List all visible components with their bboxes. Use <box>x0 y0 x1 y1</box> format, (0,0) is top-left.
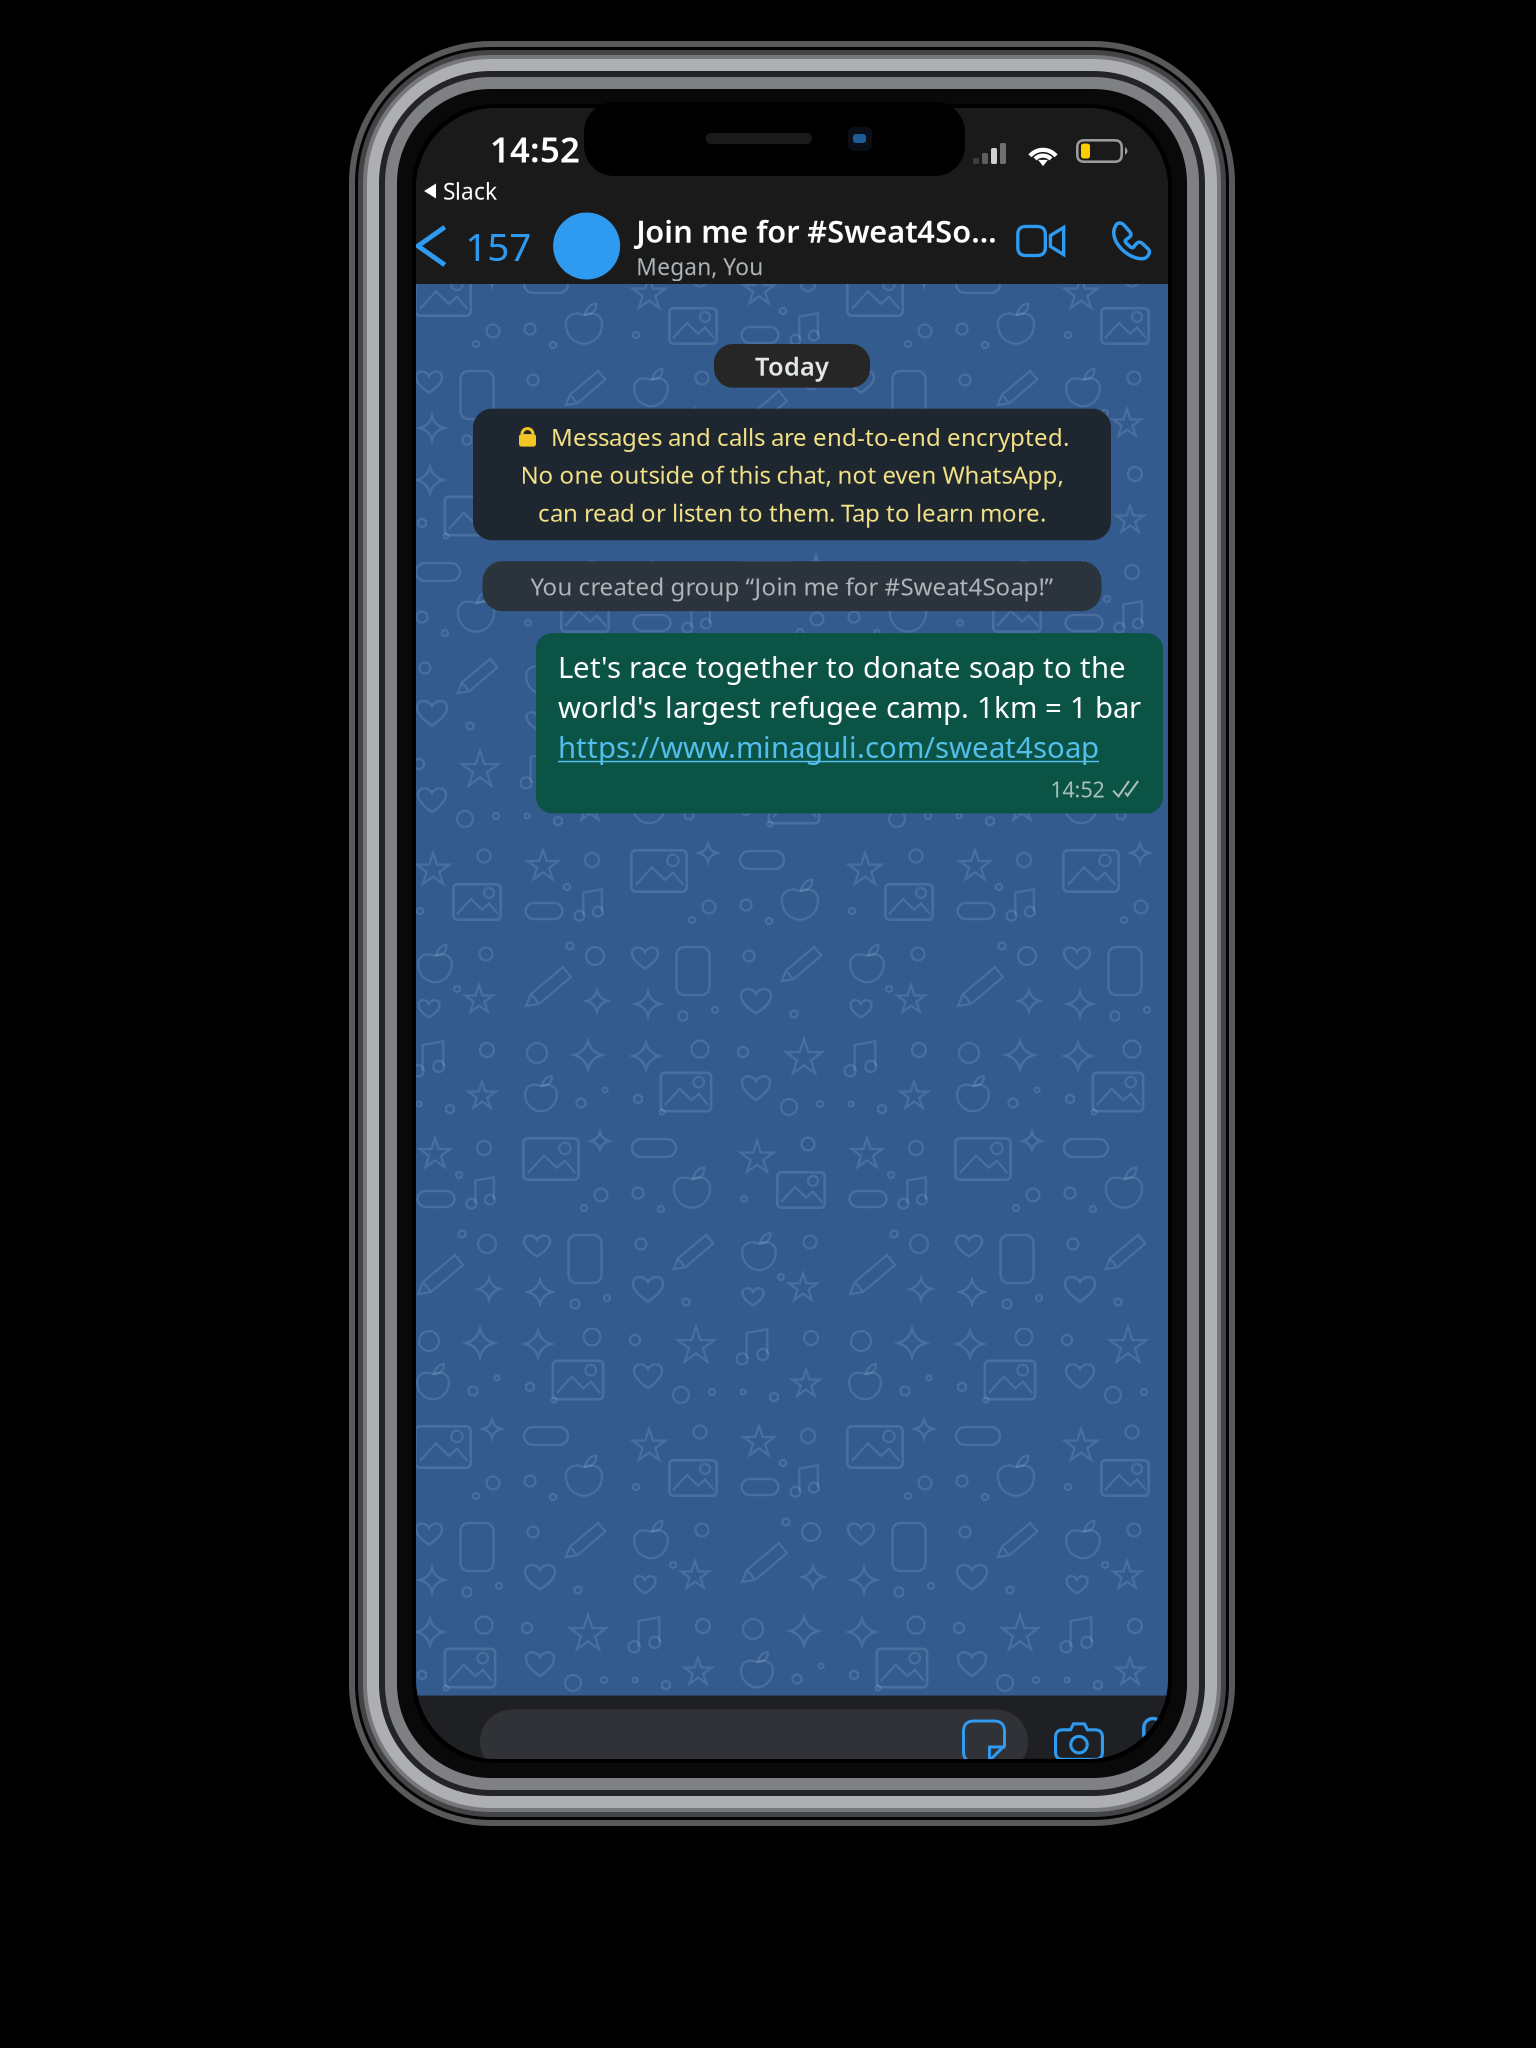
button[interactable]: 157 <box>405 206 537 286</box>
staticText: https://www.minaguli.com/sweat4soap <box>558 727 1099 766</box>
staticText: Let's race together to donate soap to th… <box>558 647 1126 686</box>
staticText: Messages and calls are end-to-end encryp… <box>551 421 1069 452</box>
staticText: Join me for #Sweat4So… <box>636 211 996 251</box>
staticText: No one outside of this chat, not even Wh… <box>520 458 1063 490</box>
button[interactable]: Video call <box>1004 212 1077 280</box>
button[interactable]: Camera <box>1054 1722 1104 1761</box>
staticText: 157 <box>465 220 531 272</box>
staticText: You created group “Join me for #Sweat4So… <box>530 570 1053 602</box>
button[interactable]: Record voice message <box>1130 1718 1176 1764</box>
staticText: 14:52 <box>1051 775 1105 803</box>
staticText: world's largest refugee camp. 1km = 1 ba… <box>558 687 1141 726</box>
button[interactable]: Message <box>480 1709 950 1773</box>
staticText: can read or listen to them. Tap to learn… <box>538 496 1046 528</box>
staticText: Megan, You <box>636 251 763 281</box>
staticText: 14:52 <box>490 126 580 172</box>
button[interactable]: Messages and calls are end-to-end encryp… <box>473 409 1111 540</box>
button[interactable]: Stickers <box>950 1709 1028 1773</box>
button[interactable]: Join me for #Sweat4So… <box>537 205 996 287</box>
staticText: Today <box>755 349 829 383</box>
button[interactable]: Voice call <box>1099 213 1160 279</box>
staticText: Slack <box>443 176 497 206</box>
